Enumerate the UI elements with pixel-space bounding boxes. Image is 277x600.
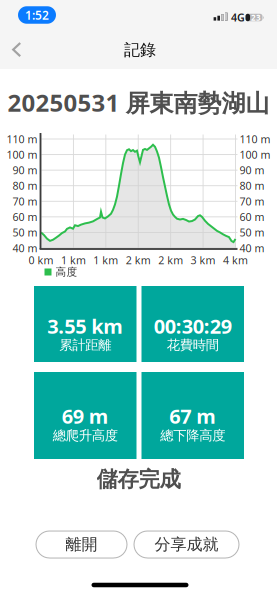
staticText: 2 km: [158, 253, 183, 267]
staticText: 40 m: [239, 241, 264, 255]
staticText: 高度: [55, 265, 77, 278]
staticText: 累計距離: [59, 337, 111, 353]
staticText: 2 km: [126, 253, 151, 267]
button[interactable]: 離開: [36, 531, 127, 558]
staticText: 60 m: [12, 210, 37, 224]
staticText: 100 m: [6, 147, 37, 162]
button[interactable]: Back: [2, 35, 32, 65]
staticText: 1 km: [93, 253, 118, 267]
staticText: 80 m: [239, 179, 264, 193]
staticText: 100 m: [239, 147, 270, 162]
staticText: 23: [251, 12, 261, 23]
staticText: 110 m: [6, 132, 37, 146]
staticText: 總爬升高度: [53, 427, 118, 444]
staticText: 50 m: [12, 225, 37, 239]
button[interactable]: 分享成就: [134, 531, 239, 558]
staticText: 4 km: [223, 253, 248, 267]
staticText: 50 m: [239, 225, 264, 239]
staticText: 儲存完成: [96, 466, 180, 493]
staticText: 3 km: [191, 253, 216, 267]
staticText: 60 m: [239, 210, 264, 224]
staticText: 1 km: [61, 253, 86, 267]
staticText: 0 km: [28, 253, 53, 267]
staticText: 1:52: [25, 7, 49, 23]
staticText: 花費時間: [167, 337, 219, 353]
staticText: 70 m: [239, 194, 264, 208]
staticText: 離開: [65, 535, 97, 554]
staticText: 分享成就: [154, 535, 218, 554]
staticText: 3.55 km: [47, 313, 123, 339]
staticText: 70 m: [12, 194, 37, 208]
staticText: 記錄: [124, 40, 156, 60]
staticText: 90 m: [12, 163, 37, 177]
staticText: 20250531 屏東南勢湖山: [7, 87, 269, 118]
staticText: 00:30:29: [154, 313, 232, 339]
staticText: 4G: [231, 10, 245, 24]
staticText: 90 m: [239, 163, 264, 177]
staticText: 69 m: [62, 403, 109, 429]
staticText: 80 m: [12, 179, 37, 193]
staticText: 110 m: [239, 132, 270, 146]
staticText: 總下降高度: [160, 427, 225, 444]
staticText: 40 m: [12, 241, 37, 255]
staticText: 67 m: [169, 403, 216, 429]
